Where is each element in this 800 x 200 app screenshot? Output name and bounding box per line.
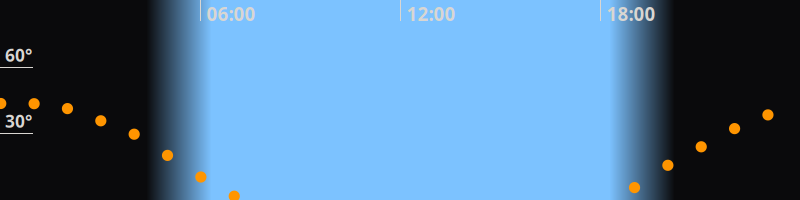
button[interactable]: Hourly temperature chart	[0, 0, 800, 200]
staticText: 30°	[5, 109, 32, 132]
staticText: 18:00	[606, 1, 655, 26]
staticText: 60°	[5, 43, 32, 66]
staticText: 12:00	[406, 1, 455, 26]
staticText: 06:00	[206, 1, 255, 26]
